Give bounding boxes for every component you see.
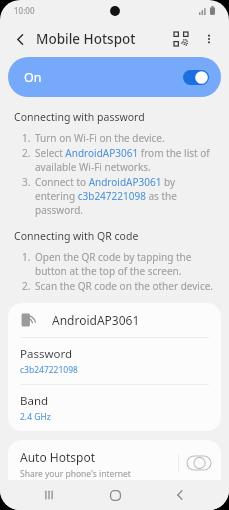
- button[interactable]: AndroidAP3061: [8, 303, 221, 337]
- staticText: 1.: [22, 131, 35, 145]
- button[interactable]: QR code: [167, 25, 195, 53]
- button[interactable]: Back: [6, 25, 34, 53]
- button[interactable]: Band: [8, 385, 221, 431]
- staticText: 10:00: [14, 5, 35, 16]
- button[interactable]: Home: [98, 480, 132, 510]
- button[interactable]: On: [8, 57, 221, 97]
- other: Auto Hotspot toggle: [187, 456, 211, 470]
- button[interactable]: More options: [195, 25, 223, 53]
- staticText: Auto Hotspot: [20, 449, 96, 465]
- staticText: Band: [20, 393, 49, 409]
- staticText: 3.: [22, 175, 35, 189]
- staticText: Select AndroidAP3061 from the list of av…: [35, 146, 217, 174]
- staticText: Turn on Wi-Fi on the device.: [35, 131, 165, 145]
- staticText: Password: [20, 346, 73, 362]
- staticText: Mobile Hotspot: [36, 30, 136, 48]
- staticText: AndroidAP3061: [52, 312, 140, 328]
- staticText: c3b247221098: [20, 364, 78, 376]
- staticText: Connecting with password: [14, 110, 145, 124]
- staticText: 2.4 GHz: [20, 411, 51, 423]
- staticText: 1.: [22, 250, 35, 264]
- staticText: Connect to AndroidAP3061 by entering c3b…: [35, 175, 217, 217]
- button[interactable]: Back: [163, 480, 197, 510]
- staticText: Share your phone's internet connection a…: [20, 468, 170, 501]
- staticText: 2.: [22, 279, 35, 293]
- button[interactable]: Recents: [32, 480, 66, 510]
- staticText: On: [24, 69, 42, 86]
- staticText: Open the QR code by tapping the button a…: [35, 250, 217, 278]
- staticText: Connecting with QR code: [14, 229, 139, 243]
- button[interactable]: Password: [8, 338, 221, 384]
- button[interactable]: Auto Hotspot: [8, 440, 221, 510]
- staticText: Scan the QR code on the other device.: [35, 279, 214, 293]
- staticText: 2.: [22, 146, 35, 160]
